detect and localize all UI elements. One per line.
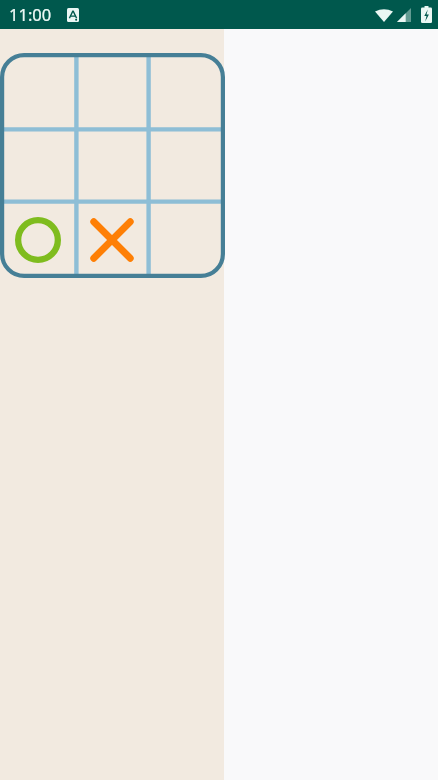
button[interactable]: Cell row 3 column 2, X (76, 201, 148, 273)
button[interactable]: Cell row 3 column 1, O (4, 201, 76, 273)
button[interactable]: Cell row 1 column 3, empty (148, 57, 220, 129)
button[interactable]: Cell row 2 column 3, empty (148, 129, 220, 201)
button[interactable]: Cell row 2 column 1, empty (4, 129, 76, 201)
button[interactable]: Cell row 2 column 2, empty (76, 129, 148, 201)
other: App notification (67, 8, 79, 22)
button[interactable]: Cell row 1 column 2, empty (76, 57, 148, 129)
button[interactable]: Cell row 1 column 1, empty (4, 57, 76, 129)
button[interactable]: Cell row 3 column 3, empty (148, 201, 220, 273)
staticText: 11:00 (9, 3, 52, 25)
